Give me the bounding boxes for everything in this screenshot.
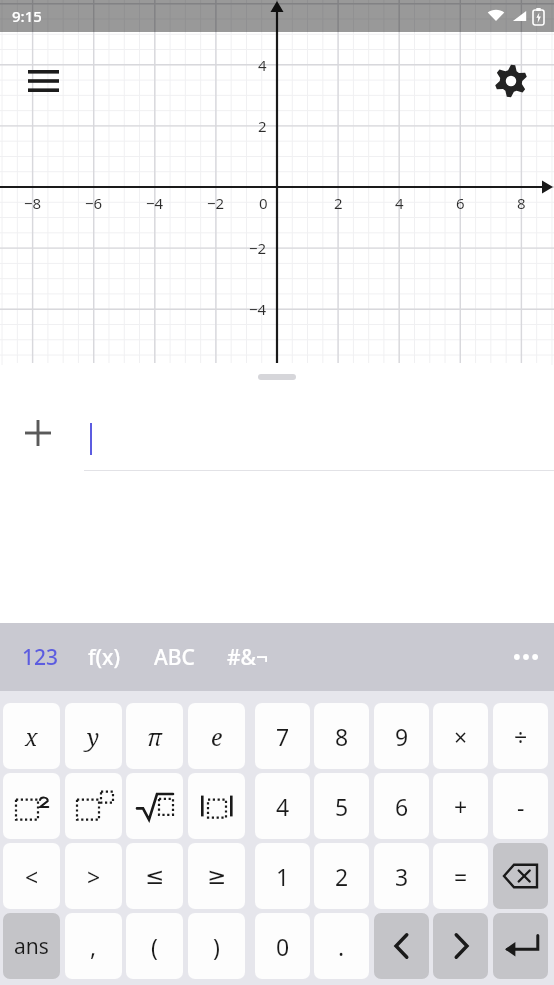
staticText: 8 [335, 721, 349, 752]
staticText: x [25, 721, 38, 752]
button[interactable]: Move left [374, 913, 429, 979]
staticText: −4 [146, 193, 164, 213]
button[interactable]: ) [188, 913, 245, 979]
button[interactable]: ≥ [188, 843, 245, 909]
staticText: ( [151, 931, 158, 962]
button[interactable]: #&¬ [218, 623, 278, 691]
staticText: 9:15 [12, 6, 42, 26]
button[interactable]: π [126, 703, 183, 769]
button[interactable]: Absolute value [188, 773, 245, 839]
staticText: −6 [85, 193, 103, 213]
button[interactable]: ans [3, 913, 60, 979]
staticText: 6 [456, 193, 465, 213]
staticText: f(x) [88, 643, 121, 672]
button[interactable]: Square root [126, 773, 183, 839]
button[interactable]: ≤ [126, 843, 183, 909]
staticText: ans [14, 932, 49, 961]
staticText: ≤ [145, 863, 165, 890]
button[interactable]: + [433, 773, 488, 839]
button[interactable]: f(x) [78, 623, 130, 691]
staticText: = [454, 861, 468, 892]
staticText: 8 [517, 193, 526, 213]
button[interactable]: Backspace [493, 843, 548, 909]
staticText: 3 [395, 861, 409, 892]
button[interactable]: ABC [144, 623, 204, 691]
staticText: 2 [335, 861, 349, 892]
button[interactable]: 2 [314, 843, 369, 909]
staticText: 0 [259, 193, 268, 213]
staticText: ≥ [207, 863, 227, 890]
staticText: 4 [395, 193, 404, 213]
button[interactable]: More options [498, 632, 554, 682]
staticText: −4 [249, 299, 267, 319]
button[interactable]: Enter [493, 913, 548, 979]
button[interactable]: . [314, 913, 369, 979]
staticText: . [338, 931, 345, 962]
staticText: 7 [276, 721, 290, 752]
staticText: 4 [276, 791, 290, 822]
button[interactable]: × [433, 703, 488, 769]
staticText: 1 [276, 861, 290, 892]
button[interactable]: 0 [255, 913, 310, 979]
button[interactable]: Power [65, 773, 122, 839]
button[interactable]: 4 [255, 773, 310, 839]
staticText: 123 [22, 643, 59, 672]
button[interactable]: > [65, 843, 122, 909]
staticText: ÷ [514, 721, 528, 752]
button[interactable]: ÷ [493, 703, 548, 769]
button[interactable]: 8 [314, 703, 369, 769]
staticText: ) [213, 931, 220, 962]
button[interactable]: Add expression [10, 409, 66, 457]
button[interactable]: 1 [255, 843, 310, 909]
staticText: e [211, 721, 223, 752]
button[interactable]: 6 [374, 773, 429, 839]
staticText: 2 [334, 193, 343, 213]
button[interactable]: Settings [483, 54, 539, 108]
button[interactable]: x [3, 703, 60, 769]
staticText: y [87, 721, 100, 752]
button[interactable]: = [433, 843, 488, 909]
staticText: 9 [395, 721, 409, 752]
staticText: - [517, 791, 525, 822]
staticText: #&¬ [227, 643, 269, 672]
button[interactable] [84, 409, 554, 471]
staticText: −2 [207, 193, 225, 213]
staticText: 4 [258, 55, 267, 75]
button[interactable]: ( [126, 913, 183, 979]
staticText: 6 [395, 791, 409, 822]
button[interactable]: 5 [314, 773, 369, 839]
button[interactable]: , [65, 913, 122, 979]
button[interactable]: - [493, 773, 548, 839]
button[interactable]: e [188, 703, 245, 769]
button[interactable]: y [65, 703, 122, 769]
button[interactable]: 7 [255, 703, 310, 769]
staticText: < [25, 861, 39, 892]
staticText: , [90, 931, 97, 962]
button[interactable]: Move right [433, 913, 488, 979]
staticText: −8 [24, 193, 42, 213]
staticText: + [454, 791, 468, 822]
button[interactable]: 9 [374, 703, 429, 769]
staticText: −2 [249, 238, 267, 258]
staticText: 2 [258, 116, 267, 136]
button[interactable]: < [3, 843, 60, 909]
button[interactable]: 123 [16, 623, 64, 691]
staticText: π [147, 721, 162, 752]
button[interactable]: Square [3, 773, 60, 839]
staticText: ABC [154, 643, 195, 672]
staticText: > [87, 861, 101, 892]
button[interactable]: 3 [374, 843, 429, 909]
staticText: 5 [335, 791, 349, 822]
button[interactable]: Menu [14, 58, 72, 102]
staticText: × [454, 721, 468, 752]
staticText: 0 [276, 931, 290, 962]
